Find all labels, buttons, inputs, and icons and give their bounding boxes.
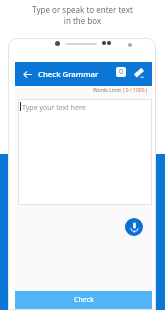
staticText: Words Limit xyxy=(93,87,123,94)
staticText: Check Grammar xyxy=(38,69,99,80)
button[interactable]: Speak xyxy=(125,218,143,236)
staticText: Type or speak to enter text in the box xyxy=(0,4,165,27)
staticText: ( 0 / 1000 ) xyxy=(123,87,148,94)
button[interactable]: 0 xyxy=(116,67,126,77)
button[interactable]: Type your text here xyxy=(18,99,152,205)
button[interactable]: Clear text xyxy=(132,66,145,79)
staticText: 0 xyxy=(119,67,124,77)
button[interactable]: Back xyxy=(20,67,35,82)
staticText: Type your text here xyxy=(22,103,86,113)
button[interactable]: Check xyxy=(15,291,152,310)
staticText: Check xyxy=(74,295,94,305)
